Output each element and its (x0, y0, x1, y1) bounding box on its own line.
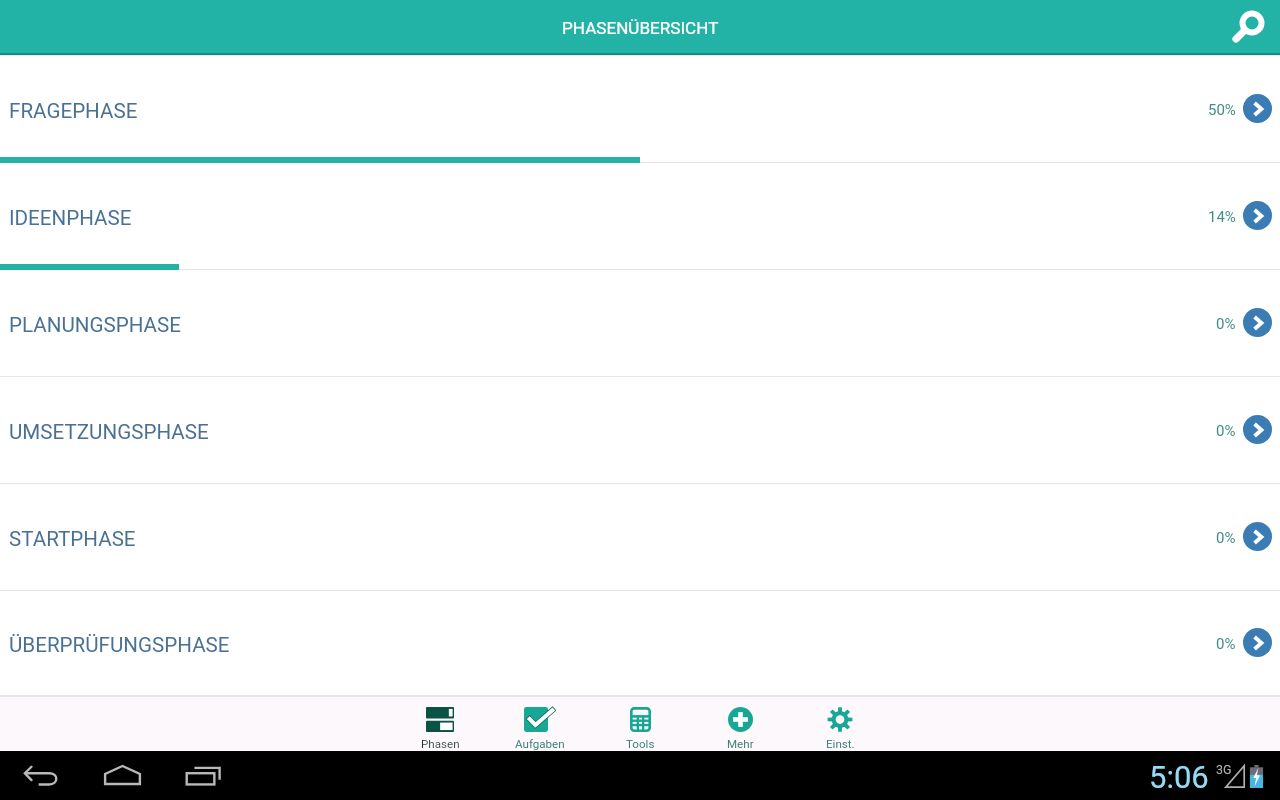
staticText: Mehr (727, 737, 754, 751)
staticText: PHASENÜBERSICHT (562, 18, 719, 38)
staticText: FRAGEPHASE (9, 99, 138, 123)
staticText: ÜBERPRÜFUNGSPHASE (9, 633, 230, 657)
button[interactable]: FRAGEPHASE (0, 56, 1280, 163)
staticText: IDEENPHASE (9, 206, 132, 230)
button[interactable]: Phasen (390, 696, 490, 751)
button[interactable]: Home (102, 758, 142, 792)
button[interactable]: PLANUNGSPHASE (0, 270, 1280, 377)
button[interactable]: STARTPHASE (0, 484, 1280, 591)
staticText: 3G (1216, 762, 1232, 777)
staticText: UMSETZUNGSPHASE (9, 420, 209, 444)
button[interactable]: ÜBERPRÜFUNGSPHASE (0, 591, 1280, 696)
button[interactable]: UMSETZUNGSPHASE (0, 377, 1280, 484)
staticText: 14% (1208, 208, 1236, 226)
staticText: 50% (1208, 101, 1236, 119)
staticText: 0% (1216, 529, 1236, 547)
staticText: 0% (1216, 315, 1236, 333)
button[interactable]: Mehr (690, 696, 790, 751)
button[interactable]: Search (1219, 2, 1267, 50)
button[interactable]: Einst. (790, 696, 890, 751)
staticText: Einst. (826, 737, 855, 751)
staticText: Phasen (421, 737, 460, 751)
button[interactable]: Back (21, 758, 61, 792)
button[interactable]: IDEENPHASE (0, 163, 1280, 270)
staticText: 0% (1216, 635, 1236, 653)
button[interactable]: Aufgaben (490, 696, 590, 751)
button[interactable]: Recent apps (183, 758, 223, 792)
staticText: 5:06 (1149, 759, 1209, 795)
staticText: PLANUNGSPHASE (9, 313, 181, 337)
staticText: STARTPHASE (9, 527, 136, 551)
staticText: Tools (626, 737, 655, 751)
staticText: 0% (1216, 422, 1236, 440)
staticText: Aufgaben (515, 737, 565, 751)
button[interactable]: Tools (590, 696, 690, 751)
